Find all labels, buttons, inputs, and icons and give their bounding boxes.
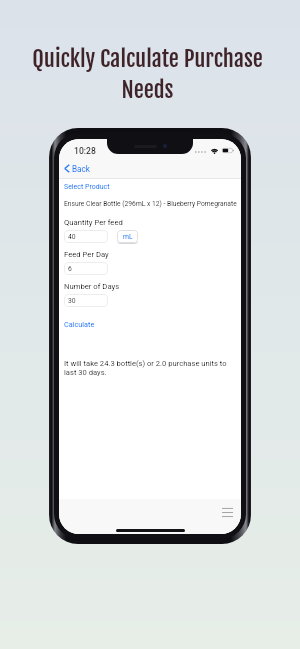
staticText: Quickly Calculate Purchase Needs: [16, 44, 279, 103]
staticText: Quantity Per feed: [64, 218, 123, 227]
staticText: Feed Per Day: [64, 250, 109, 259]
staticText: 30: [68, 297, 76, 305]
staticText: It will take 24.3 bottle(s) or 2.0 purch…: [64, 359, 238, 377]
button[interactable]: Menu: [218, 503, 236, 521]
staticText: 10:28: [74, 146, 96, 156]
staticText: mL: [123, 233, 133, 241]
button[interactable]: Ensure Clear Bottle (296mL x 12) - Blueb…: [64, 200, 237, 208]
button[interactable]: Select Product: [64, 183, 110, 191]
button[interactable]: Back: [59, 156, 241, 178]
button[interactable]: 30: [64, 294, 108, 307]
staticText: 6: [68, 265, 72, 273]
button[interactable]: Calculate: [64, 320, 95, 329]
staticText: 40: [68, 233, 76, 241]
staticText: Back: [72, 164, 90, 174]
button[interactable]: 40: [64, 230, 108, 243]
button[interactable]: mL: [117, 230, 138, 243]
staticText: Number of Days: [64, 282, 120, 291]
button[interactable]: 6: [64, 262, 108, 275]
